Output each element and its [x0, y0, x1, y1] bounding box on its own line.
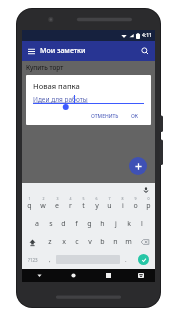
staticText: Поздравить Катю	[26, 85, 82, 94]
staticText: f	[75, 219, 78, 229]
button[interactable]: Recent apps	[91, 269, 126, 282]
staticText: s	[49, 219, 53, 229]
staticText: v	[88, 237, 92, 247]
button[interactable]: Поздравить Катю	[22, 83, 155, 105]
button[interactable]: z	[43, 233, 57, 251]
button[interactable]: Open navigation menu	[26, 46, 37, 57]
staticText: 1	[28, 196, 31, 201]
button[interactable]: ?123	[22, 251, 44, 268]
staticText: Мои заметки	[40, 46, 86, 56]
button[interactable]: c	[70, 233, 83, 251]
staticText: n	[113, 237, 118, 247]
button[interactable]: Купить торт	[22, 61, 155, 83]
staticText: m	[125, 237, 132, 247]
button[interactable]: Backspace	[135, 233, 155, 251]
staticText: d	[61, 219, 66, 229]
button[interactable]: p	[142, 196, 155, 215]
button[interactable]: q	[22, 196, 36, 215]
button[interactable]: g	[83, 215, 96, 233]
button[interactable]: f	[70, 215, 83, 233]
staticText: t	[82, 201, 85, 211]
staticText: 8	[121, 196, 124, 201]
button[interactable]: s	[44, 215, 57, 233]
button[interactable]: Add note	[129, 157, 147, 175]
staticText: 7	[108, 196, 111, 201]
button[interactable]: Shift	[22, 233, 43, 251]
staticText: x	[62, 237, 66, 247]
button[interactable]: Enter	[138, 254, 149, 265]
staticText: a	[35, 219, 39, 229]
staticText: c	[75, 237, 79, 247]
staticText: u	[107, 201, 112, 211]
staticText: q	[27, 201, 32, 211]
button[interactable]: m	[122, 233, 135, 251]
staticText: k	[127, 219, 131, 229]
staticText: l	[141, 219, 143, 229]
staticText: 3	[56, 196, 59, 201]
button[interactable]: Home	[56, 269, 91, 282]
button[interactable]: t	[77, 196, 90, 215]
button[interactable]: b	[96, 233, 109, 251]
button[interactable]: ОК	[128, 111, 142, 120]
button[interactable]: d	[57, 215, 70, 233]
button[interactable]: j	[109, 215, 122, 233]
button[interactable]: v	[83, 233, 96, 251]
staticText: o	[133, 201, 138, 211]
staticText: i	[122, 201, 124, 211]
button[interactable]: w	[36, 196, 50, 215]
button[interactable]: e	[50, 196, 64, 215]
button[interactable]: ,	[44, 251, 56, 268]
staticText: 5	[82, 196, 85, 201]
staticText: j	[115, 219, 117, 229]
staticText: Купить торт	[26, 63, 64, 72]
button[interactable]: y	[90, 196, 103, 215]
button[interactable]: Voice input	[141, 185, 151, 195]
staticText: e	[55, 201, 59, 211]
staticText: Позвонить маме	[26, 107, 79, 116]
button[interactable]: .	[120, 251, 132, 268]
staticText: .	[125, 256, 127, 264]
staticText: ?123	[28, 257, 38, 263]
staticText: ,	[49, 256, 51, 264]
button[interactable]: r	[64, 196, 77, 215]
staticText: g	[87, 219, 92, 229]
button[interactable]: Switch keyboard	[126, 269, 155, 282]
staticText: b	[100, 237, 105, 247]
button[interactable]: i	[116, 196, 129, 215]
staticText: p	[146, 201, 151, 211]
staticText: 9	[134, 196, 137, 201]
button[interactable]: x	[57, 233, 70, 251]
button[interactable]: u	[103, 196, 116, 215]
button[interactable]: o	[129, 196, 142, 215]
staticText: ОТМЕНИТЬ	[91, 113, 119, 118]
button[interactable]: Search	[139, 45, 151, 57]
button[interactable]: Позвонить маме	[22, 105, 155, 127]
staticText: 6	[95, 196, 98, 201]
button[interactable]: h	[96, 215, 109, 233]
staticText: ОК	[131, 113, 139, 118]
staticText: 2	[42, 196, 45, 201]
staticText: w	[40, 201, 46, 211]
button[interactable]: ОТМЕНИТЬ	[88, 111, 122, 120]
button[interactable]: Hide keyboard	[22, 269, 56, 282]
staticText: r	[69, 201, 72, 211]
button[interactable]: n	[109, 233, 122, 251]
staticText: 4:11	[142, 32, 152, 39]
button[interactable]: k	[122, 215, 135, 233]
staticText: y	[95, 201, 99, 211]
button[interactable]: l	[135, 215, 148, 233]
button[interactable]: a	[30, 215, 44, 233]
staticText: h	[100, 219, 105, 229]
staticText: 4	[69, 196, 72, 201]
staticText: 0	[147, 196, 150, 201]
staticText: Новая папка	[33, 81, 80, 91]
staticText: Идеи для работы	[33, 95, 88, 104]
staticText: z	[48, 237, 52, 247]
